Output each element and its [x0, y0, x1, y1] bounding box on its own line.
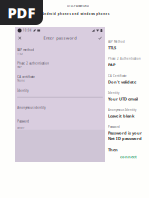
staticText: None	[17, 79, 25, 82]
staticText: Password	[17, 120, 29, 123]
staticText: Phase 2 Authentication	[108, 57, 141, 61]
staticText: Identity	[17, 89, 28, 92]
staticText: CA certificate	[17, 75, 35, 79]
staticText: Anonymous Identity	[108, 108, 136, 112]
button[interactable]: CA certificate	[15, 75, 105, 83]
button[interactable]: Identity	[15, 89, 105, 92]
staticText: TTLS	[17, 52, 22, 56]
staticText: Don't validate	[108, 79, 136, 85]
staticText: EAP Method	[108, 40, 125, 43]
button[interactable]: Cancel	[18, 36, 21, 40]
staticText: CA Certificate	[108, 74, 127, 78]
staticText: Identity	[108, 91, 119, 95]
button[interactable]: Password	[15, 120, 105, 130]
staticText: PAP	[108, 62, 115, 67]
button[interactable]: Phase 2 authentication	[15, 62, 105, 69]
staticText: Your UTD email	[108, 96, 138, 102]
staticText: Enter	[17, 126, 24, 130]
staticText: EAP method	[17, 48, 34, 52]
staticText: 10:04	[23, 29, 32, 32]
staticText: Android phones and windows phones	[42, 12, 109, 16]
staticText: Enter password	[43, 35, 76, 41]
staticText: Then	[108, 147, 118, 152]
staticText: Anonymous identity	[17, 106, 45, 109]
staticText: PDF	[7, 3, 35, 22]
staticText: UTD-PASSWORD	[67, 4, 89, 8]
button[interactable]: EAP method	[15, 48, 105, 56]
button[interactable]: Save	[98, 37, 102, 40]
button[interactable]: Anonymous identity	[15, 106, 105, 109]
staticText: Password	[108, 125, 120, 129]
staticText: connect	[120, 154, 137, 159]
staticText: PAP	[17, 65, 22, 69]
staticText: TTLS	[108, 45, 116, 50]
staticText: Phase 2 authentication	[17, 62, 49, 65]
staticText: Password is your Net ID password	[108, 130, 142, 141]
staticText: Leave it blank	[108, 113, 134, 119]
